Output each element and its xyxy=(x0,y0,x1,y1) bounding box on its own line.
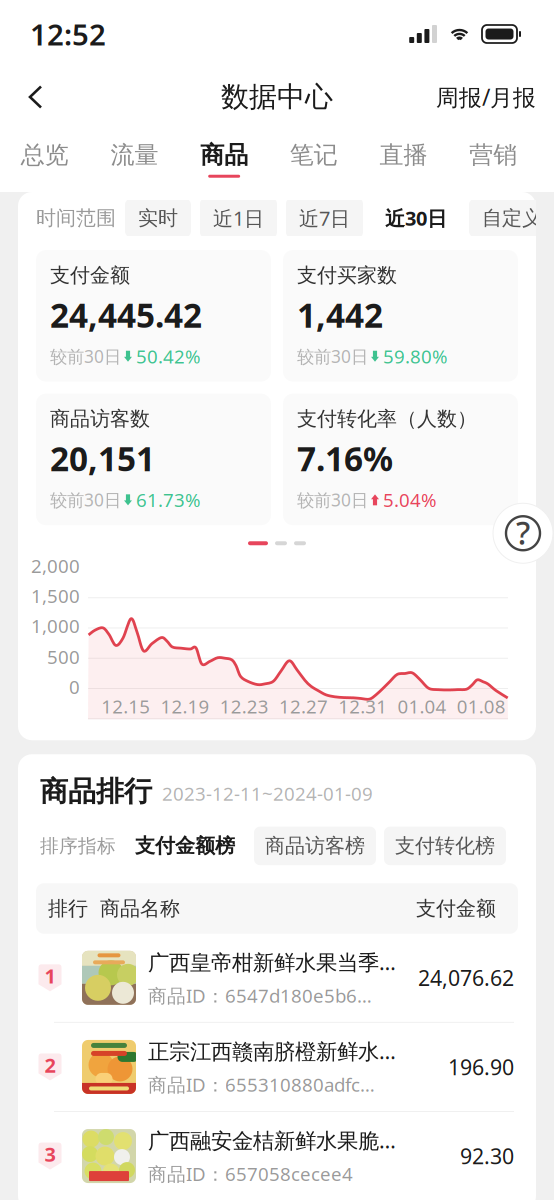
staticText: 12.31 xyxy=(338,694,387,719)
staticText: 近7日 xyxy=(299,205,350,231)
staticText: 较前30日 xyxy=(50,345,121,368)
staticText: 12.23 xyxy=(220,694,269,719)
staticText: 近1日 xyxy=(213,205,264,231)
button[interactable]: 直播 xyxy=(359,136,448,182)
staticText: 50.42% xyxy=(136,344,201,369)
staticText: 0 xyxy=(69,674,80,699)
staticText: 2 xyxy=(44,1052,55,1078)
button[interactable]: 营销 xyxy=(448,136,538,182)
button[interactable]: 周报/月报 xyxy=(426,73,536,121)
staticText: 商品 xyxy=(200,140,248,170)
button[interactable]: 1 xyxy=(18,934,536,1022)
staticText: 7.16% xyxy=(297,436,393,480)
staticText: 排行 xyxy=(48,896,88,921)
staticText: 商品访客榜 xyxy=(265,834,365,858)
staticText: 1 xyxy=(44,962,55,989)
staticText: 数据中心 xyxy=(221,80,333,114)
staticText: 12.19 xyxy=(160,694,209,719)
staticText: 1,442 xyxy=(297,293,383,337)
staticText: 广西皇帝柑新鲜水果当季… xyxy=(148,948,396,976)
staticText: 61.73% xyxy=(136,487,201,512)
staticText: 92.30 xyxy=(460,1142,514,1170)
staticText: 12.27 xyxy=(279,694,328,719)
staticText: 较前30日 xyxy=(297,488,368,511)
button[interactable]: 返回 xyxy=(18,75,53,118)
button[interactable]: 支付转化榜 xyxy=(384,827,506,865)
staticText: 时间范围 xyxy=(36,206,116,230)
staticText: 12:52 xyxy=(30,14,106,53)
staticText: 支付金额 xyxy=(416,896,496,921)
staticText: 24,076.62 xyxy=(418,964,514,992)
staticText: 2023-12-11~2024-01-09 xyxy=(162,781,373,806)
staticText: 较前30日 xyxy=(297,345,368,368)
staticText: 周报/月报 xyxy=(436,82,536,112)
staticText: 正宗江西赣南脐橙新鲜水… xyxy=(148,1037,396,1065)
staticText: 商品访客数 xyxy=(50,407,150,431)
staticText: 支付金额榜 xyxy=(135,834,235,858)
staticText: 商品ID：657058cecee4 xyxy=(148,1161,353,1186)
staticText: 总览 xyxy=(21,140,69,170)
button[interactable]: 2 xyxy=(18,1023,536,1111)
staticText: 196.90 xyxy=(448,1053,514,1081)
button[interactable]: 近1日 xyxy=(200,198,277,238)
staticText: 500 xyxy=(47,644,80,669)
button[interactable]: 总览 xyxy=(0,136,90,182)
staticText: 营销 xyxy=(469,140,517,170)
staticText: 3 xyxy=(44,1141,55,1167)
staticText: 笔记 xyxy=(290,140,338,170)
staticText: 59.80% xyxy=(383,344,448,369)
staticText: 支付金额 xyxy=(50,263,130,288)
staticText: 01.04 xyxy=(398,694,447,719)
staticText: 支付转化榜 xyxy=(395,834,495,858)
staticText: 排序指标 xyxy=(40,834,116,857)
staticText: 12.15 xyxy=(101,694,150,719)
button[interactable]: 流量 xyxy=(90,136,179,182)
staticText: 1,500 xyxy=(31,583,80,608)
staticText: 20,151 xyxy=(50,436,155,480)
staticText: 24,445.42 xyxy=(50,293,202,337)
staticText: 5.04% xyxy=(383,487,437,512)
button[interactable]: 近7日 xyxy=(286,198,363,238)
staticText: 商品ID：6547d180e5b6… xyxy=(148,983,372,1008)
button[interactable]: 笔记 xyxy=(269,136,359,182)
staticText: 商品名称 xyxy=(100,896,180,921)
button[interactable]: 3 xyxy=(18,1112,536,1200)
staticText: 较前30日 xyxy=(50,488,121,511)
staticText: 直播 xyxy=(379,140,427,170)
button[interactable]: 商品访客榜 xyxy=(254,827,376,865)
staticText: 01.08 xyxy=(457,694,506,719)
staticText: 1,000 xyxy=(31,613,80,638)
staticText: 自定义日 xyxy=(482,206,554,230)
button[interactable]: 帮助 xyxy=(492,502,554,564)
staticText: ? xyxy=(516,511,530,553)
staticText: 流量 xyxy=(110,140,158,170)
staticText: 近30日 xyxy=(385,205,447,231)
button[interactable]: 实时 xyxy=(125,199,191,237)
staticText: 广西融安金桔新鲜水果脆… xyxy=(148,1126,396,1154)
staticText: 2,000 xyxy=(31,553,80,578)
staticText: 支付买家数 xyxy=(297,263,397,288)
staticText: 支付转化率（人数） xyxy=(297,407,477,431)
button[interactable]: 支付金额榜 xyxy=(124,827,246,865)
button[interactable]: 自定义日 xyxy=(469,199,554,237)
staticText: 实时 xyxy=(138,206,178,230)
button[interactable]: 近30日 xyxy=(372,198,460,238)
staticText: 商品排行 xyxy=(40,774,152,809)
button[interactable]: 商品 xyxy=(179,136,269,182)
staticText: 商品ID：655310880adfc… xyxy=(148,1072,375,1097)
